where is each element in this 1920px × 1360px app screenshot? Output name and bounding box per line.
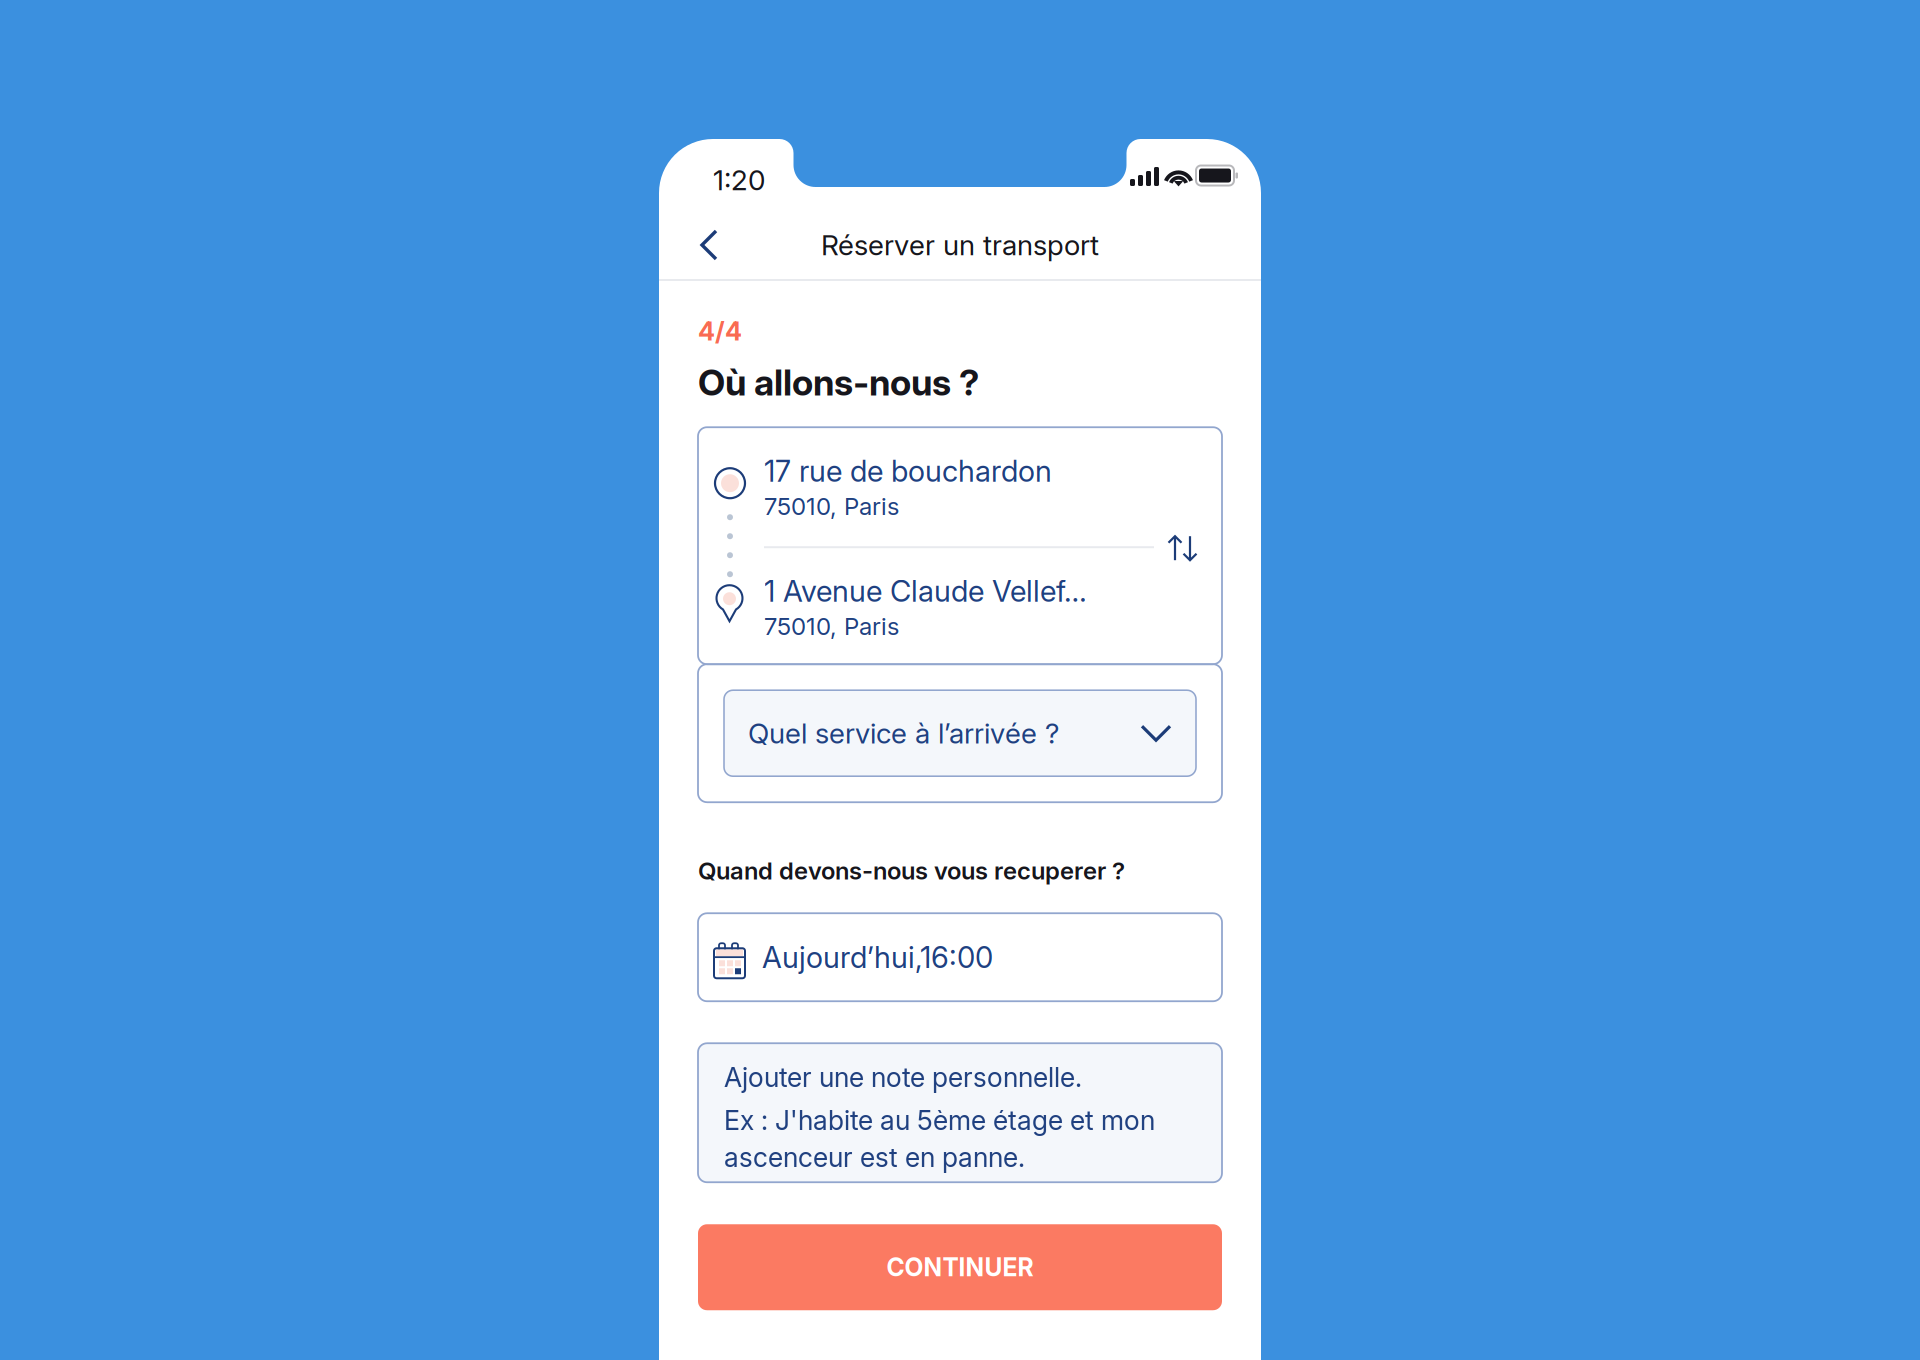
- button[interactable]: 1 Avenue Claude Vellef…: [764, 573, 1144, 641]
- button[interactable]: Swap addresses: [1157, 522, 1209, 574]
- staticText: Quand devons-nous vous recuperer ?: [698, 856, 1125, 885]
- staticText: ascenceur est en panne.: [724, 1141, 1025, 1173]
- button[interactable]: CONTINUER: [698, 1224, 1222, 1310]
- staticText: Aujourd’hui,16:00: [762, 939, 993, 975]
- staticText: 1:20: [713, 163, 765, 197]
- button[interactable]: Ajouter une note personnelle.: [698, 1043, 1222, 1182]
- button[interactable]: Quel service à l’arrivée ?: [724, 690, 1196, 776]
- staticText: Où allons-nous ?: [698, 361, 979, 404]
- staticText: 17 rue de bouchardon: [764, 453, 1052, 489]
- staticText: Réserver un transport: [821, 228, 1099, 262]
- staticText: 4/4: [698, 316, 742, 347]
- staticText: 1 Avenue Claude Vellef…: [764, 573, 1087, 609]
- button[interactable]: Back: [681, 217, 737, 273]
- staticText: Ajouter une note personnelle.: [724, 1061, 1082, 1093]
- button[interactable]: Aujourd’hui,16:00: [698, 913, 1222, 1001]
- staticText: Ex : J'habite au 5ème étage et mon: [724, 1104, 1155, 1136]
- staticText: 75010, Paris: [764, 492, 899, 521]
- staticText: 75010, Paris: [764, 612, 899, 641]
- staticText: Quel service à l’arrivée ?: [748, 716, 1059, 750]
- staticText: CONTINUER: [886, 1252, 1033, 1282]
- button[interactable]: 17 rue de bouchardon: [764, 453, 1144, 521]
